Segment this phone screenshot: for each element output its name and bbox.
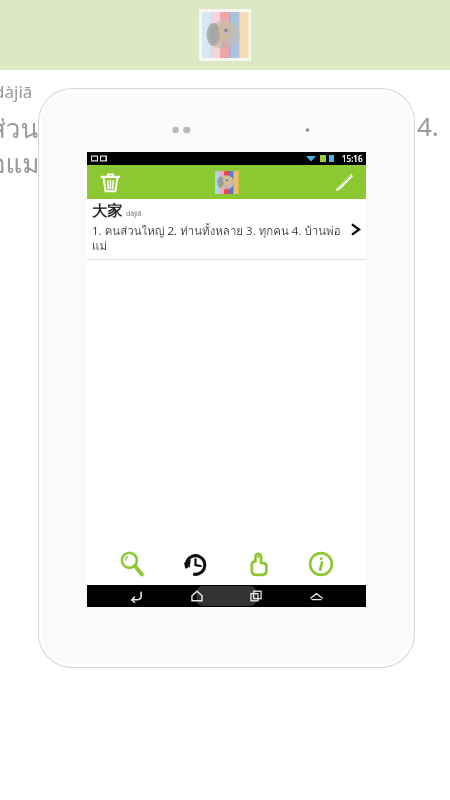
staticText: ส่วน: [0, 108, 39, 149]
button[interactable]: 大家: [87, 199, 366, 260]
button[interactable]: Delete: [95, 167, 125, 197]
button[interactable]: Menu: [306, 586, 326, 606]
staticText: อแม: [0, 143, 40, 184]
staticText: dàjiā: [0, 80, 33, 103]
button[interactable]: App logo: [199, 9, 251, 61]
button[interactable]: Practice: [240, 546, 276, 582]
button[interactable]: Recents: [246, 586, 266, 606]
button[interactable]: Home: [187, 586, 207, 606]
button[interactable]: Logo: [215, 171, 238, 194]
staticText: 4.: [417, 108, 439, 143]
button[interactable]: Info: [303, 546, 339, 582]
staticText: 15:16: [342, 153, 363, 164]
button[interactable]: History: [177, 546, 213, 582]
staticText: dàjiā: [126, 209, 142, 219]
other: Open details: [348, 222, 362, 236]
button[interactable]: Search: [114, 546, 150, 582]
staticText: 大家: [92, 202, 122, 221]
staticText: 1. คนส่วนใหญ่ 2. ท่านทั้งหลาย 3. ทุกคน 4…: [92, 222, 344, 255]
button[interactable]: Edit: [328, 167, 358, 197]
button[interactable]: Back: [127, 586, 147, 606]
